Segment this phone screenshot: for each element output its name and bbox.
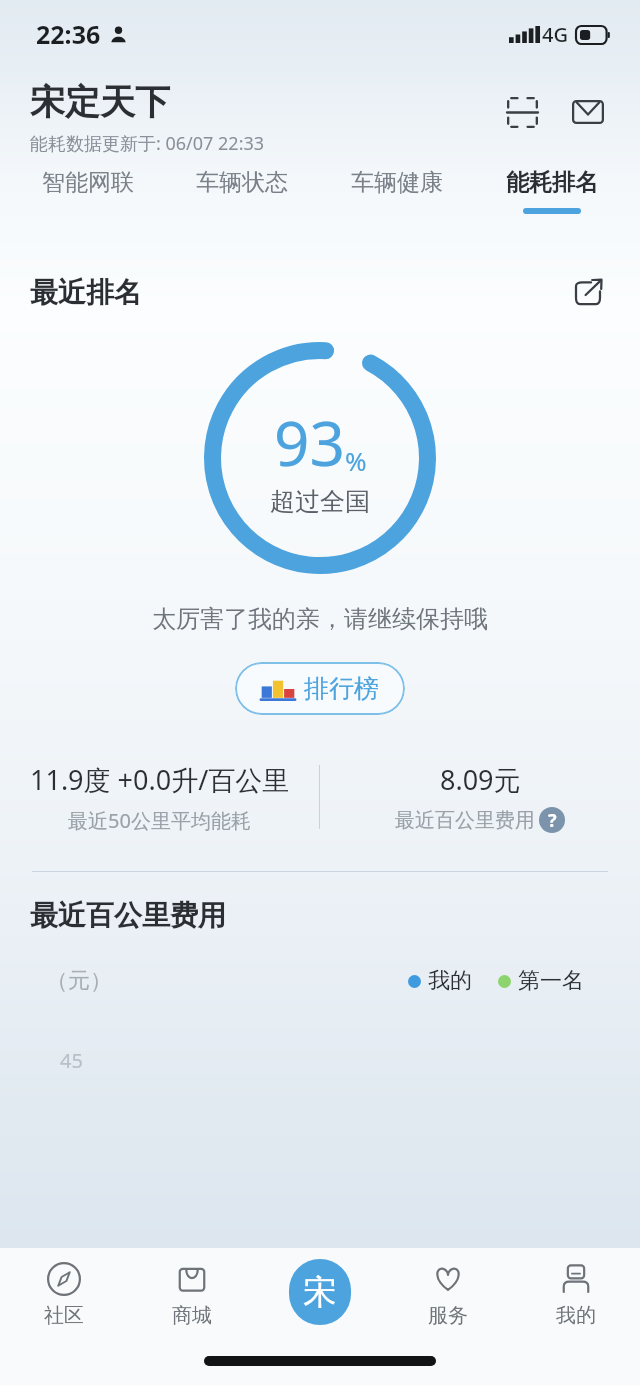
staticText: 93 (274, 400, 345, 484)
staticText: （元） (46, 967, 112, 995)
staticText: 最近50公里平均能耗 (68, 807, 251, 834)
button[interactable]: 智能网联 (28, 168, 148, 208)
staticText: 第一名 (518, 967, 584, 995)
staticText: 宋 (303, 1271, 337, 1314)
staticText: 最近排名 (30, 275, 142, 310)
staticText: 我的 (556, 1303, 596, 1328)
button[interactable]: Share (564, 268, 612, 316)
staticText: 车辆状态 (196, 168, 288, 197)
button[interactable]: Help (539, 807, 565, 833)
staticText: 8.09元 (440, 761, 521, 798)
staticText: 宋定天下 (30, 80, 170, 124)
button[interactable]: 商城 (128, 1248, 256, 1348)
staticText: 最近百公里费用 (395, 808, 535, 833)
staticText: 社区 (44, 1303, 84, 1328)
button[interactable]: 服务 (384, 1248, 512, 1348)
staticText: 太厉害了我的亲，请继续保持哦 (152, 604, 488, 634)
staticText: 商城 (172, 1303, 212, 1328)
button[interactable]: 车辆健康 (337, 168, 457, 208)
staticText: 车辆健康 (351, 168, 443, 197)
button[interactable]: Scan (496, 86, 548, 138)
button[interactable]: 排行榜 (235, 662, 405, 715)
button[interactable]: 社区 (0, 1248, 128, 1348)
staticText: 智能网联 (42, 168, 134, 197)
staticText: 22:36 (36, 17, 101, 51)
staticText: 能耗数据更新于: 06/07 22:33 (30, 131, 265, 156)
staticText: 服务 (428, 1303, 468, 1328)
staticText: 超过全国 (270, 486, 370, 517)
staticText: 最近百公里费用 (30, 898, 226, 933)
staticText: 4G (542, 21, 568, 48)
button[interactable]: 车辆状态 (182, 168, 302, 208)
button[interactable]: Messages (562, 86, 614, 138)
staticText: 45 (60, 1047, 83, 1074)
staticText: ? (548, 808, 557, 833)
staticText: 排行榜 (304, 673, 379, 704)
button[interactable]: 宋 (256, 1248, 384, 1348)
button[interactable]: 能耗排名 (492, 168, 612, 214)
staticText: 能耗排名 (506, 168, 598, 197)
staticText: 我的 (428, 967, 472, 995)
staticText: 11.9度 +0.0升/百公里 (30, 761, 290, 798)
staticText: % (345, 443, 367, 478)
button[interactable]: 我的 (512, 1248, 640, 1348)
